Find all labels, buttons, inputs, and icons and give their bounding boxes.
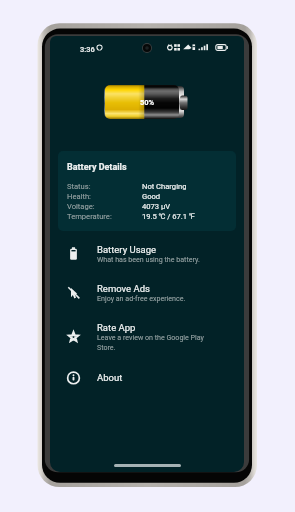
staticText: Enjoy an ad-free experience. [97,294,186,302]
staticText: Health: [67,192,142,201]
staticText: 19.5 ℃ / 67.1 ℉ [142,212,196,221]
button[interactable]: Remove ads [50,273,244,312]
staticText: Battery Details [67,162,127,173]
staticText: Leave a review on the Google Play Store. [97,333,209,351]
staticText: Not Charging [142,182,187,191]
staticText: 3:36 [80,45,95,54]
staticText: Remove Ads [97,283,150,294]
staticText: Temperature: [67,212,142,221]
other: About [67,371,80,384]
button[interactable]: About [50,361,244,394]
staticText: About [97,372,123,383]
staticText: Voltage: [67,202,142,211]
staticText: Rate App [97,322,136,333]
staticText: 4073 µV [142,202,171,211]
other: Remove ads [67,286,80,299]
staticText: Status: [67,182,142,191]
staticText: What has been using the battery. [97,255,200,263]
staticText: Battery Usage [97,244,157,255]
staticText: Good [142,192,161,201]
other: Rate app [67,330,80,343]
button[interactable]: Rate app [50,312,244,361]
other: Battery usage [67,247,80,260]
button[interactable]: Battery usage [50,234,244,273]
staticText: 50% [140,98,155,107]
